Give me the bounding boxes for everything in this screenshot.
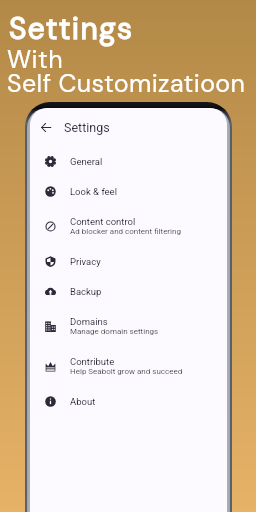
button[interactable]: Look & feel	[30, 176, 227, 206]
staticText: Manage domain settings	[70, 327, 159, 336]
staticText: Privacy	[70, 256, 101, 267]
staticText: About	[70, 396, 96, 407]
button[interactable]: Domains	[30, 306, 227, 346]
staticText: Settings	[9, 9, 134, 48]
button[interactable]: Content control	[30, 206, 227, 246]
staticText: Settings	[64, 120, 110, 135]
button[interactable]: Backup	[30, 276, 227, 306]
staticText: Content control	[70, 216, 136, 227]
button[interactable]: Contribute	[30, 346, 227, 386]
staticText: Domains	[70, 316, 108, 327]
button[interactable]: Back	[36, 117, 56, 137]
staticText: Look & feel	[70, 186, 117, 197]
staticText: Backup	[70, 286, 102, 297]
staticText: General	[70, 156, 103, 167]
staticText: With	[7, 43, 63, 76]
staticText: Help Seabolt grow and succeed	[70, 367, 183, 376]
button[interactable]: Privacy	[30, 246, 227, 276]
staticText: Self Customizatioon	[7, 67, 246, 100]
button[interactable]: General	[30, 146, 227, 176]
staticText: Contribute	[70, 356, 115, 367]
button[interactable]: About	[30, 386, 227, 416]
staticText: Ad blocker and content filtering	[70, 227, 181, 236]
